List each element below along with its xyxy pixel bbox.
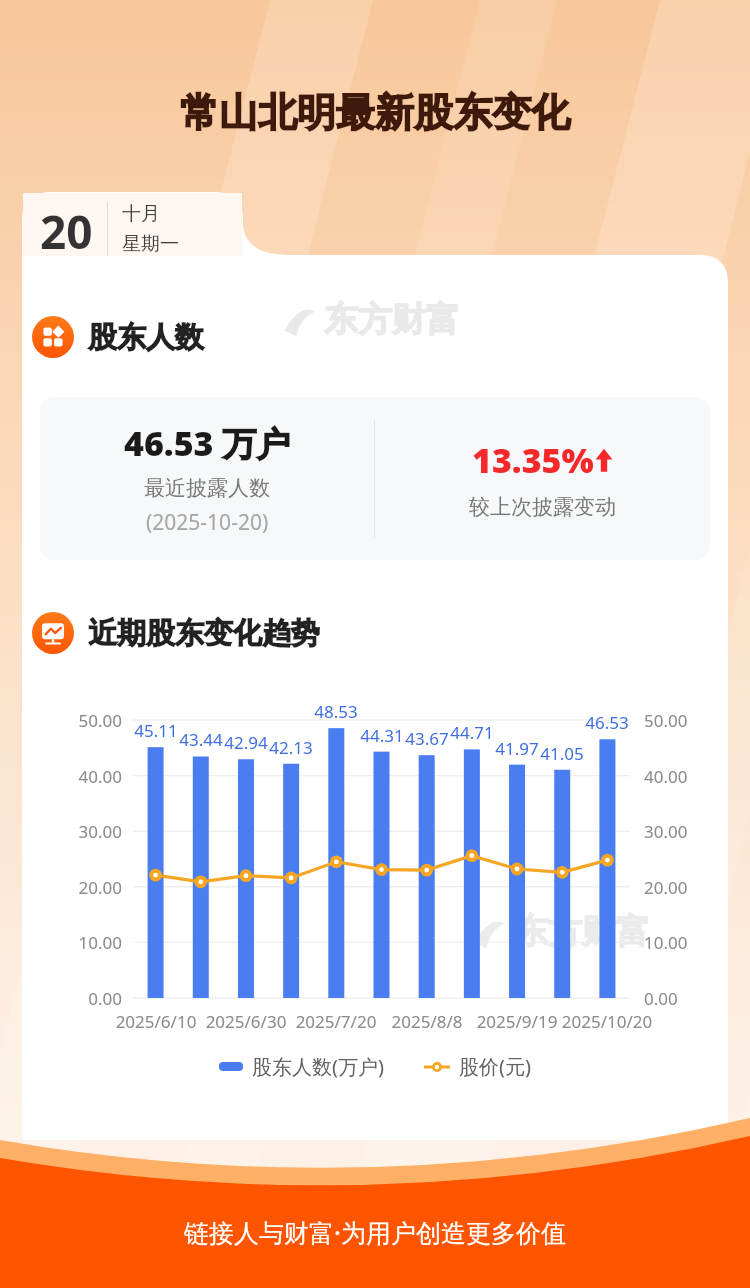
staticText: 44.31 bbox=[352, 724, 412, 747]
staticText: 股东人数(万户) bbox=[252, 1053, 384, 1080]
staticText: 45.11 bbox=[126, 719, 186, 742]
staticText: 2025/10/20 bbox=[559, 1010, 655, 1033]
staticText: 2025/6/10 bbox=[108, 1010, 204, 1033]
staticText: 30.00 bbox=[644, 820, 706, 843]
staticText: 20.00 bbox=[60, 876, 122, 899]
staticText: 42.94 bbox=[216, 731, 276, 754]
staticText: (2025-10-20) bbox=[146, 508, 269, 537]
staticText: 0.00 bbox=[60, 987, 122, 1010]
staticText: 41.97 bbox=[487, 737, 547, 760]
staticText: 较上次披露变动 bbox=[469, 494, 616, 520]
staticText: 43.67 bbox=[397, 727, 457, 750]
staticText: 2025/8/8 bbox=[379, 1010, 475, 1033]
staticText: 最近披露人数 bbox=[144, 475, 270, 501]
button[interactable]: 股价(元) bbox=[424, 1053, 531, 1080]
button[interactable]: 股东人数 bbox=[32, 316, 204, 358]
staticText: 48.53 bbox=[306, 700, 366, 723]
button[interactable]: 近期股东变化趋势 bbox=[32, 612, 320, 654]
staticText: 股价(元) bbox=[459, 1053, 531, 1080]
button[interactable]: 46.53 万户 bbox=[40, 397, 710, 560]
staticText: 20 bbox=[40, 200, 93, 258]
staticText: 46.53 bbox=[577, 711, 637, 734]
staticText: 10.00 bbox=[644, 931, 706, 954]
staticText: 50.00 bbox=[60, 709, 122, 732]
staticText: 星期一 bbox=[122, 232, 179, 256]
staticText: 20.00 bbox=[644, 876, 706, 899]
staticText: 东方财富 bbox=[514, 910, 650, 953]
staticText: 近期股东变化趋势 bbox=[88, 615, 320, 652]
staticText: 2025/6/30 bbox=[198, 1010, 294, 1033]
staticText: 十月 bbox=[122, 202, 160, 226]
other: 股东人数 bbox=[32, 316, 74, 358]
staticText: 30.00 bbox=[60, 820, 122, 843]
staticText: 股东人数 bbox=[88, 319, 204, 356]
staticText: 0.00 bbox=[644, 987, 706, 1010]
other: 近期股东变化趋势 bbox=[32, 612, 74, 654]
staticText: 41.05 bbox=[532, 742, 592, 765]
staticText: 42.13 bbox=[261, 736, 321, 759]
staticText: 2025/7/20 bbox=[288, 1010, 384, 1033]
staticText: 13.35% bbox=[472, 437, 594, 483]
staticText: 40.00 bbox=[644, 765, 706, 788]
staticText: 44.71 bbox=[442, 721, 502, 744]
button[interactable]: 股东人数(万户) bbox=[219, 1053, 384, 1080]
staticText: 50.00 bbox=[644, 709, 706, 732]
staticText: 2025/9/19 bbox=[469, 1010, 565, 1033]
staticText: 46.53 万户 bbox=[124, 420, 291, 466]
staticText: 链接人与财富·为用户创造更多价值 bbox=[184, 1215, 566, 1249]
staticText: 40.00 bbox=[60, 765, 122, 788]
staticText: 43.44 bbox=[171, 728, 231, 751]
staticText: 常山北明最新股东变化 bbox=[180, 88, 570, 137]
staticText: 东方财富 bbox=[324, 298, 460, 341]
staticText: 10.00 bbox=[60, 931, 122, 954]
